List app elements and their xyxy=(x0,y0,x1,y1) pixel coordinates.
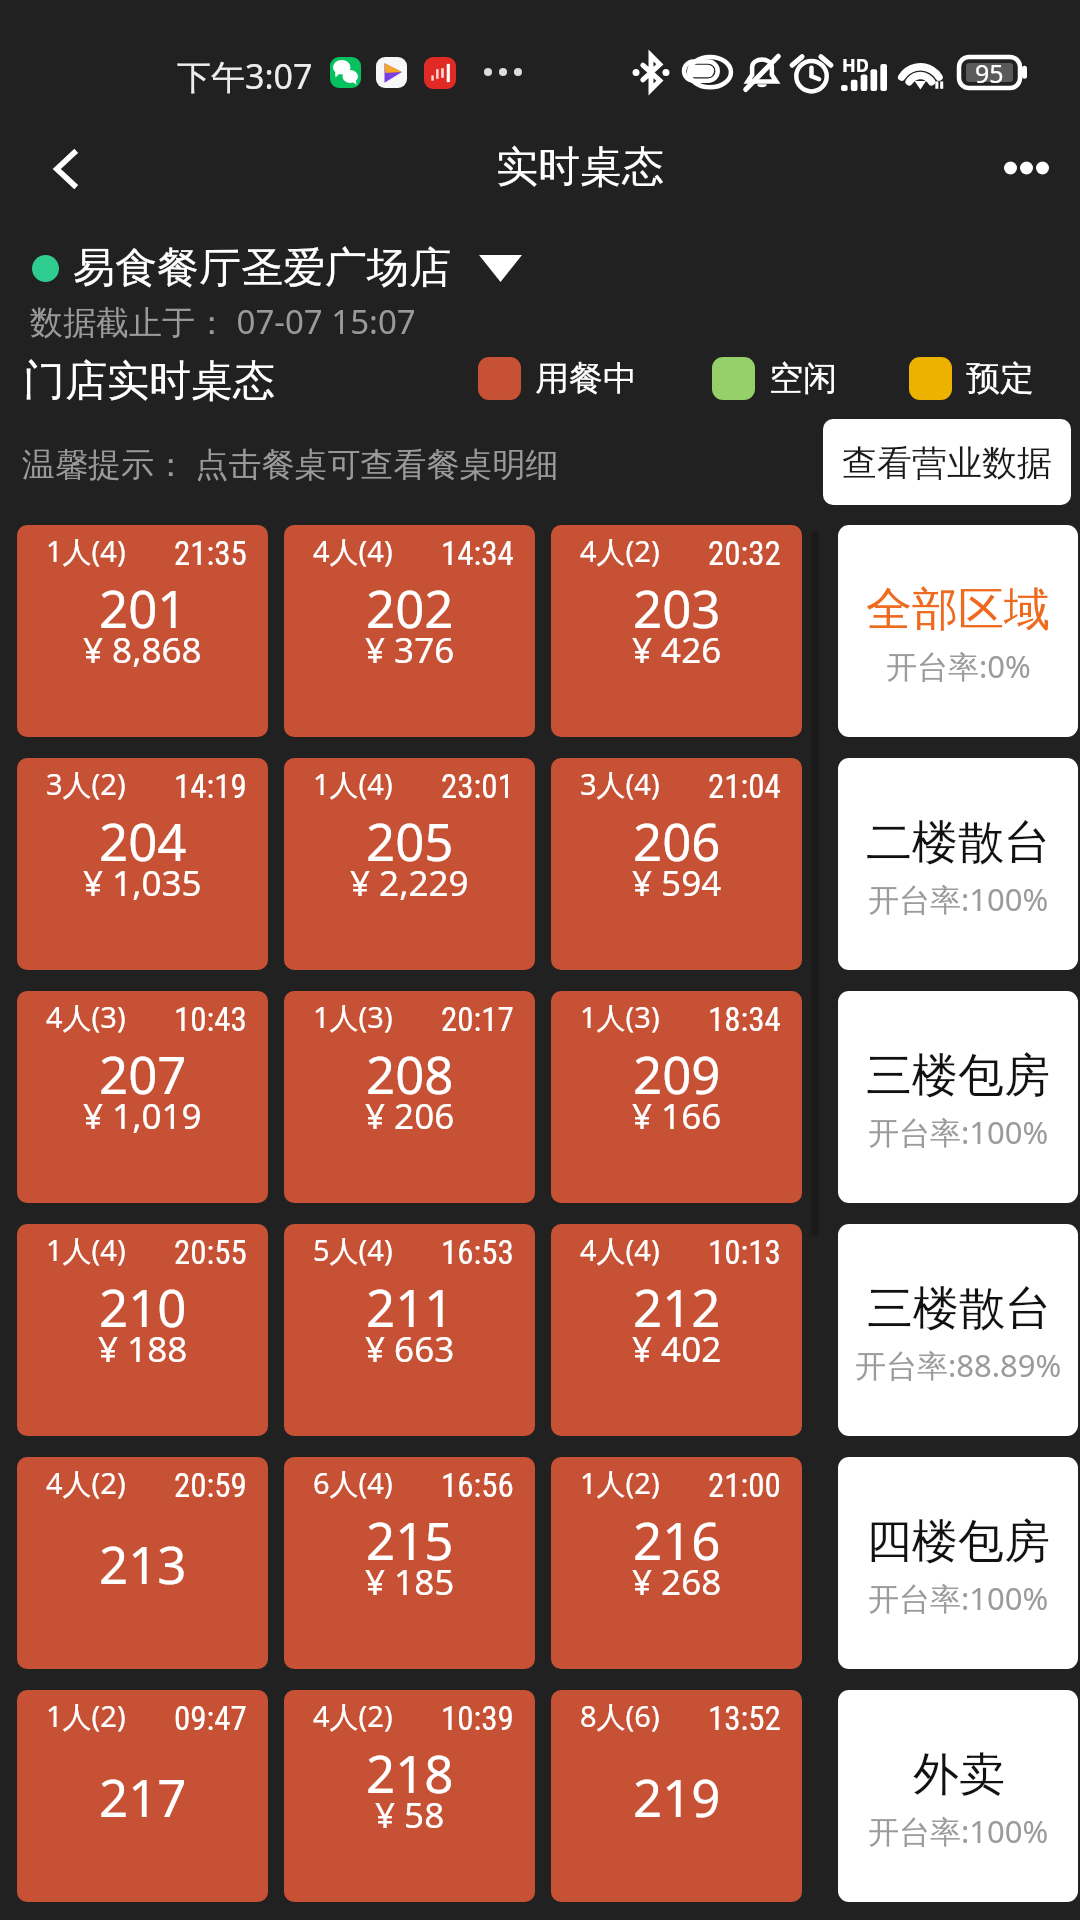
staticText: HD xyxy=(842,53,869,78)
staticText: 开台率:100% xyxy=(868,1577,1049,1619)
staticText: 201 xyxy=(99,573,187,642)
button[interactable]: 二楼散台 xyxy=(838,758,1078,970)
staticText: 易食餐厅圣爱广场店 xyxy=(73,242,451,295)
staticText: 1人(2) xyxy=(46,1696,126,1736)
button[interactable]: 4人(4) xyxy=(551,1224,802,1436)
staticText: 开台率:100% xyxy=(868,1810,1049,1852)
staticText: 203 xyxy=(633,573,721,642)
button[interactable]: 1人(3) xyxy=(551,991,802,1203)
staticText: 21:00 xyxy=(708,1466,781,1505)
staticText: 5人(4) xyxy=(313,1230,393,1270)
button[interactable]: 1人(2) xyxy=(17,1690,268,1902)
staticText: 四楼包房 xyxy=(866,1513,1050,1571)
staticText: ¥ 402 xyxy=(632,1325,722,1373)
staticText: ¥ 663 xyxy=(365,1325,455,1373)
staticText: 4人(2) xyxy=(580,531,660,571)
button[interactable]: 预定 xyxy=(909,352,1034,404)
staticText: 外卖 xyxy=(913,1746,1005,1804)
staticText: 4人(2) xyxy=(46,1463,126,1503)
button[interactable]: 3人(2) xyxy=(17,758,268,970)
staticText: 门店实时桌态 xyxy=(23,355,275,407)
button[interactable]: 三楼包房 xyxy=(838,991,1078,1203)
staticText: 14:19 xyxy=(174,767,247,806)
staticText: 204 xyxy=(99,806,187,875)
staticText: 23:01 xyxy=(441,767,514,806)
staticText: 三楼包房 xyxy=(866,1047,1050,1105)
staticText: 1人(4) xyxy=(46,1230,126,1270)
button[interactable]: Back xyxy=(20,128,110,218)
staticText: 温馨提示： 点击餐桌可查看餐桌明细 xyxy=(22,441,559,486)
staticText: 1人(4) xyxy=(46,531,126,571)
button[interactable]: 四楼包房 xyxy=(838,1457,1078,1669)
staticText: 13:52 xyxy=(708,1699,781,1738)
button[interactable]: 三楼散台 xyxy=(838,1224,1078,1436)
button[interactable]: 1人(4) xyxy=(17,1224,268,1436)
staticText: 实时桌态 xyxy=(496,141,664,194)
button[interactable]: 6人(4) xyxy=(284,1457,535,1669)
staticText: 210 xyxy=(99,1272,187,1341)
button[interactable]: 4人(3) xyxy=(17,991,268,1203)
button[interactable]: 3人(4) xyxy=(551,758,802,970)
staticText: 1人(3) xyxy=(580,997,660,1037)
button[interactable]: 8人(6) xyxy=(551,1690,802,1902)
staticText: 4人(4) xyxy=(313,531,393,571)
staticText: 208 xyxy=(366,1039,454,1108)
staticText: 209 xyxy=(633,1039,721,1108)
staticText: 10:39 xyxy=(441,1699,514,1738)
staticText: ¥ 2,229 xyxy=(350,859,469,907)
button[interactable]: 1人(3) xyxy=(284,991,535,1203)
button[interactable]: 1人(4) xyxy=(284,758,535,970)
button[interactable]: 1人(4) xyxy=(17,525,268,737)
button[interactable]: 用餐中 xyxy=(478,352,637,404)
staticText: ¥ 1,035 xyxy=(83,859,202,907)
staticText: ¥ 1,019 xyxy=(83,1092,202,1140)
button[interactable]: 1人(2) xyxy=(551,1457,802,1669)
staticText: ¥ 8,868 xyxy=(83,626,202,674)
staticText: ¥ 206 xyxy=(365,1092,455,1140)
staticText: 211 xyxy=(366,1272,454,1341)
staticText: 8人(6) xyxy=(580,1696,660,1736)
button[interactable]: 全部区域 xyxy=(838,525,1078,737)
staticText: 6人(4) xyxy=(313,1463,393,1503)
staticText: 16:53 xyxy=(441,1233,514,1272)
staticText: 1人(3) xyxy=(313,997,393,1037)
staticText: 开台率:0% xyxy=(886,645,1031,687)
button[interactable]: 4人(2) xyxy=(551,525,802,737)
staticText: 16:56 xyxy=(441,1466,514,1505)
staticText: 开台率:100% xyxy=(868,1111,1049,1153)
staticText: 开台率:100% xyxy=(868,878,1049,920)
staticText: 216 xyxy=(633,1505,721,1574)
staticText: 1人(2) xyxy=(580,1463,660,1503)
staticText: 4人(2) xyxy=(313,1696,393,1736)
staticText: 20:17 xyxy=(441,1000,514,1039)
staticText: 1人(4) xyxy=(313,764,393,804)
button[interactable]: 查看营业数据 xyxy=(823,419,1071,505)
staticText: 三楼散台 xyxy=(867,1280,1051,1338)
staticText: ¥ 268 xyxy=(632,1558,722,1606)
staticText: 预定 xyxy=(966,357,1034,400)
staticText: 10:43 xyxy=(174,1000,247,1039)
button[interactable]: 4人(2) xyxy=(17,1457,268,1669)
button[interactable]: 5人(4) xyxy=(284,1224,535,1436)
staticText: ¥ 58 xyxy=(375,1791,445,1839)
staticText: 开台率:88.89% xyxy=(855,1344,1062,1386)
staticText: ¥ 166 xyxy=(632,1092,722,1140)
staticText: 二楼散台 xyxy=(866,814,1050,872)
button[interactable]: 易食餐厅圣爱广场店 xyxy=(32,240,522,296)
staticText: 215 xyxy=(366,1505,454,1574)
staticText: 207 xyxy=(99,1039,187,1108)
staticText: 217 xyxy=(99,1762,187,1831)
staticText: ¥ 185 xyxy=(365,1558,455,1606)
staticText: 21:35 xyxy=(174,534,247,573)
button[interactable]: 空闲 xyxy=(712,352,837,404)
staticText: ¥ 188 xyxy=(98,1325,188,1373)
button[interactable]: 4人(4) xyxy=(284,525,535,737)
button[interactable]: More options xyxy=(986,133,1066,213)
button[interactable]: 4人(2) xyxy=(284,1690,535,1902)
staticText: 202 xyxy=(366,573,454,642)
staticText: 205 xyxy=(366,806,454,875)
button[interactable]: 外卖 xyxy=(838,1690,1078,1902)
staticText: 全部区域 xyxy=(866,581,1050,639)
staticText: 206 xyxy=(633,806,721,875)
staticText: 18:34 xyxy=(708,1000,781,1039)
